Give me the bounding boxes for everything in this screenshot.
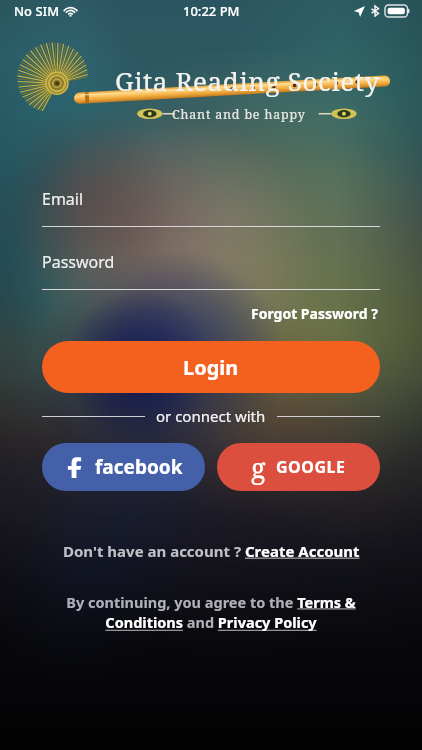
staticText: or connect with (156, 406, 266, 426)
staticText: GOOGLE (276, 456, 346, 478)
staticText: Don't have an account ? Create Account (63, 541, 360, 561)
button[interactable]: facebook (42, 443, 205, 491)
staticText: Login (183, 354, 239, 381)
button[interactable]: Password (42, 251, 380, 290)
staticText: By continuing, you agree to the Terms & … (26, 592, 396, 633)
button[interactable]: Forgot Password ? (249, 300, 380, 327)
staticText: Gita Reading Society (115, 63, 380, 98)
button[interactable]: By continuing, you agree to the Terms & … (26, 592, 396, 633)
staticText: No SIM (14, 2, 60, 20)
staticText: Password (42, 251, 115, 273)
staticText: Forgot Password ? (251, 304, 378, 323)
button[interactable]: g (217, 443, 380, 491)
button[interactable]: Login (42, 341, 380, 393)
staticText: facebook (95, 454, 183, 480)
staticText: Chant and be happy (172, 106, 306, 123)
button[interactable]: Don't have an account ? Create Account (0, 541, 422, 561)
staticText: 10:22 PM (183, 2, 240, 20)
staticText: g (251, 449, 266, 486)
button[interactable]: Email (42, 188, 380, 227)
staticText: Email (42, 188, 84, 210)
